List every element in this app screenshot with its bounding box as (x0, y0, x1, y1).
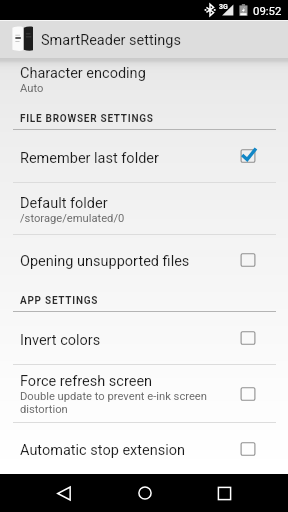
staticText: Automatic stop extension (20, 442, 186, 459)
button[interactable]: Recents (185, 474, 265, 512)
staticText: Opening unsupported files (20, 253, 190, 270)
staticText: /storage/emulated/0 (20, 212, 125, 225)
button[interactable]: Home (104, 474, 185, 512)
staticText: Character encoding (20, 65, 146, 82)
staticText: Invert colors (20, 332, 101, 349)
staticText: FILE BROWSER SETTINGS (20, 113, 154, 125)
staticText: 09:52 (253, 4, 282, 17)
button[interactable]: Force refresh screen (0, 365, 288, 422)
button[interactable]: Back (24, 474, 104, 512)
button[interactable]: Automatic stop extension (0, 423, 288, 474)
button[interactable]: Remember last folder (0, 130, 288, 182)
staticText: 3G (219, 3, 228, 11)
staticText: Force refresh screen (20, 373, 153, 390)
staticText: Default folder (20, 195, 108, 212)
button[interactable]: Invert colors (0, 312, 288, 364)
button[interactable]: Default folder (0, 183, 288, 234)
staticText: Double update to prevent e-ink screen di… (20, 390, 220, 416)
button[interactable]: Character encoding (0, 58, 288, 102)
staticText: Auto (20, 82, 44, 95)
staticText: Remember last folder (20, 150, 159, 167)
button[interactable]: Opening unsupported files (0, 235, 288, 284)
staticText: SmartReader settings (41, 32, 181, 49)
staticText: APP SETTINGS (20, 295, 99, 307)
